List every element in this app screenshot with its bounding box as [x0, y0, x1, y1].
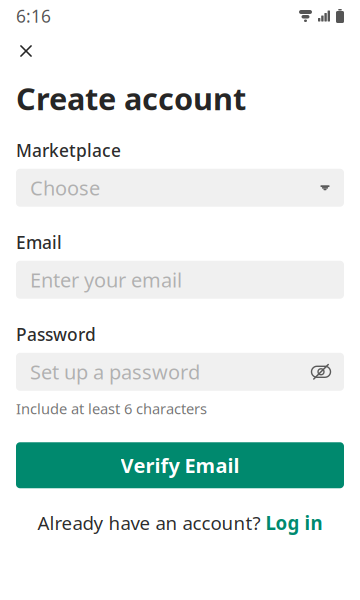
staticText: Verify Email — [120, 452, 239, 479]
button[interactable]: Show password — [308, 359, 334, 385]
button[interactable]: Enter your email — [16, 261, 344, 299]
button[interactable]: Choose — [16, 169, 344, 207]
button[interactable]: Log in — [265, 510, 322, 535]
staticText: 6:16 — [16, 4, 51, 27]
staticText: Enter your email — [30, 266, 182, 293]
staticText: Marketplace — [16, 139, 121, 162]
staticText: Choose — [30, 174, 100, 201]
staticText: Include at least 6 characters — [16, 399, 207, 418]
staticText: Set up a password — [30, 358, 200, 385]
staticText: Already have an account? — [37, 510, 265, 535]
button[interactable]: Verify Email — [16, 442, 344, 488]
staticText: Create account — [16, 78, 246, 119]
staticText: Email — [16, 231, 62, 254]
staticText: Password — [16, 323, 96, 346]
staticText: Log in — [265, 510, 322, 535]
button[interactable]: Close — [6, 34, 46, 68]
